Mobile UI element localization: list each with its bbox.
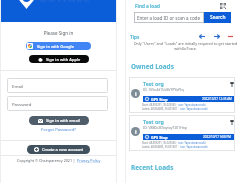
staticText: Search xyxy=(210,14,226,21)
button[interactable]: Forgot Password? xyxy=(1,127,116,133)
staticText: GoTrace xyxy=(38,0,91,6)
staticText: Create a new account xyxy=(42,147,84,152)
button[interactable]: Next tip xyxy=(213,32,221,40)
staticText: Copyright © Chainparency 2021 | xyxy=(17,158,77,163)
button[interactable]: i xyxy=(129,77,235,113)
button[interactable]: Search xyxy=(204,12,231,23)
staticText: Sign in with Apple xyxy=(46,57,81,62)
button[interactable]: Dismiss tips xyxy=(226,32,234,40)
staticText: icon: Yaposlovianovskii xyxy=(178,141,206,145)
staticText: Sign in with Google xyxy=(37,44,74,49)
staticText: Test org xyxy=(143,118,164,125)
staticText: GPS Stop xyxy=(151,97,168,102)
staticText: Latest: 48.854285, 35.031601 · xyxy=(142,107,180,111)
staticText: Password xyxy=(12,101,32,107)
staticText: Test org xyxy=(143,80,164,87)
staticText: GPS Stop xyxy=(151,135,168,140)
staticText: icon: Yaposlovianovskii xyxy=(178,103,206,107)
staticText: Sign in with email xyxy=(46,118,80,123)
staticText: Start: 48.859291, 35.023545 · xyxy=(142,103,178,107)
staticText: i xyxy=(135,90,137,97)
button[interactable]: Scan QR code xyxy=(218,1,227,10)
staticText: Recent Loads xyxy=(131,163,174,172)
button[interactable]: Previous tip xyxy=(198,32,206,40)
button[interactable]: Password xyxy=(7,96,108,111)
staticText: 2022/10/17 9:08 PM xyxy=(203,135,232,139)
button[interactable]: Email xyxy=(7,78,108,93)
staticText: Only "Users" and "Loads" are initially r… xyxy=(130,41,241,46)
button[interactable]: Pin load xyxy=(228,118,235,125)
staticText: Find a load xyxy=(135,3,160,9)
staticText: icon: Yaposlovianovskii xyxy=(180,107,208,111)
staticText: Owned Loads xyxy=(131,62,174,71)
staticText: Tips xyxy=(130,34,140,40)
button[interactable]: i xyxy=(129,115,235,151)
button[interactable]: Privacy Policy xyxy=(77,158,101,163)
staticText: Enter a load ID or scan a code xyxy=(137,15,200,21)
button[interactable]: Sign in with Google xyxy=(26,42,91,50)
staticText: i xyxy=(135,128,137,135)
staticText: Start: 48.859291, 35.023545 · xyxy=(142,141,178,145)
staticText: withGoTrace. xyxy=(130,46,241,51)
staticText: icon: Yaposlovianovskii xyxy=(180,145,208,149)
staticText: 2022/12/27 12:35 AM xyxy=(202,97,232,101)
button[interactable]: Pin load xyxy=(228,80,235,87)
staticText: ID: V8B0s3ESoytoyT201Hnp xyxy=(143,125,187,130)
staticText: Latest: 48.854285, 35.031601 · xyxy=(142,145,180,149)
button[interactable]: Sign in with email xyxy=(29,116,89,125)
button[interactable]: Sign in with Apple xyxy=(29,55,89,63)
staticText: ID: 165e4d1Ud6VYPYaPIq xyxy=(143,87,184,92)
button[interactable]: Create a new account xyxy=(27,145,90,154)
staticText: Please Sign in xyxy=(1,30,116,36)
staticText: Email xyxy=(12,83,24,89)
button[interactable]: Enter a load ID or scan a code xyxy=(134,12,204,23)
